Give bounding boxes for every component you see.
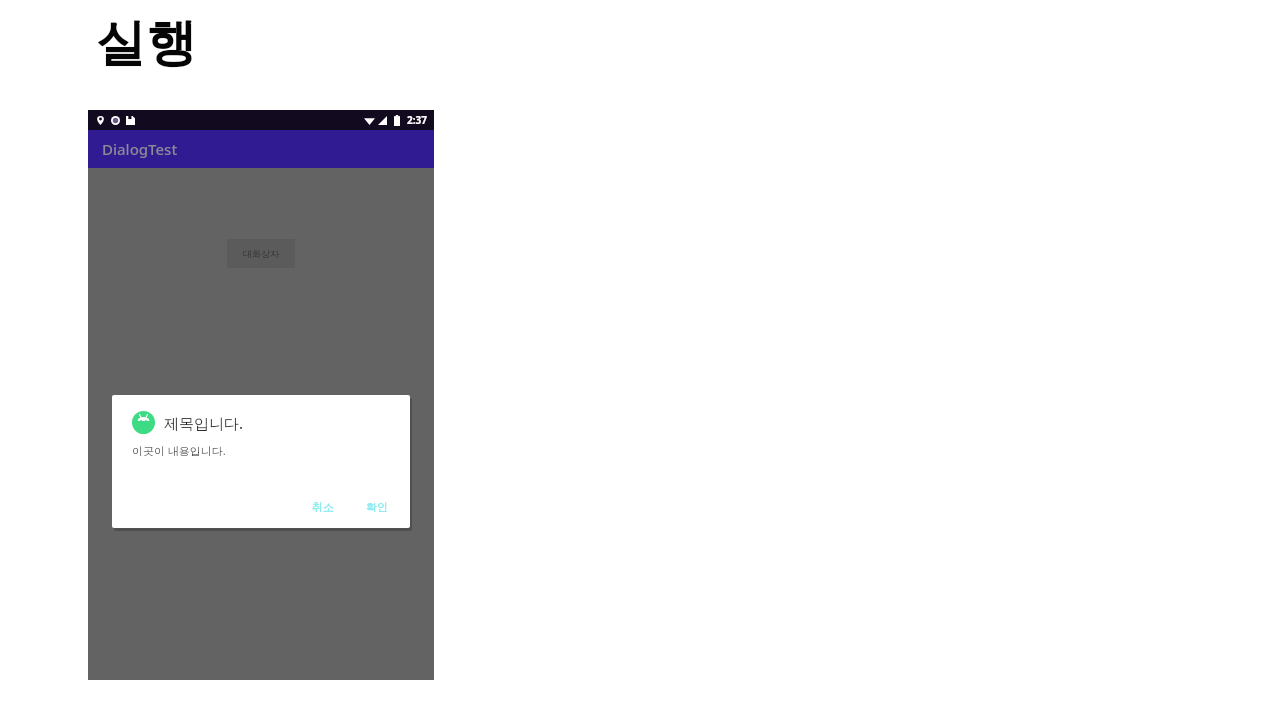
staticText: 2:37 xyxy=(407,113,427,127)
staticText: 취소 xyxy=(312,500,334,514)
button[interactable]: 취소 xyxy=(306,496,340,518)
staticText: 대화상자 xyxy=(243,248,279,259)
button[interactable]: 대화상자 xyxy=(227,239,295,268)
button[interactable]: 확인 xyxy=(360,496,394,518)
staticText: 확인 xyxy=(366,500,388,514)
staticText: 이곳이 내용입니다. xyxy=(132,443,226,458)
staticText: DialogTest xyxy=(102,139,178,159)
staticText: 제목입니다. xyxy=(164,413,244,433)
staticText: 실행 xyxy=(95,12,197,75)
